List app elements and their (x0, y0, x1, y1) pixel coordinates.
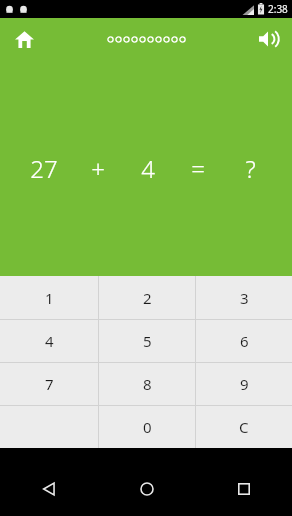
button[interactable]: 2 (99, 276, 195, 319)
button[interactable]: 0 (99, 406, 195, 448)
button[interactable]: Home (8, 23, 40, 55)
staticText: 9 (240, 374, 249, 394)
staticText: + (91, 152, 105, 185)
button[interactable]: 3 (196, 276, 292, 319)
staticText: 0 (143, 417, 152, 437)
button[interactable]: 5 (99, 320, 195, 362)
staticText: C (239, 417, 249, 437)
button[interactable]: 6 (196, 320, 292, 362)
staticText: 1 (45, 288, 54, 308)
button[interactable]: 1 (0, 276, 98, 319)
staticText: = (191, 152, 205, 185)
button[interactable]: Back (0, 469, 98, 509)
button[interactable]: 4 (0, 320, 98, 362)
staticText: 3 (240, 288, 249, 308)
staticText: ? (245, 152, 256, 185)
staticText: 2:38 (268, 2, 288, 16)
staticText: 4 (45, 331, 54, 351)
staticText: 8 (143, 374, 152, 394)
button[interactable]: Home (98, 469, 195, 509)
staticText: 6 (240, 331, 249, 351)
staticText: 4 (141, 152, 155, 185)
button[interactable]: 7 (0, 363, 98, 405)
button[interactable]: 9 (196, 363, 292, 405)
button[interactable]: C (196, 406, 292, 448)
staticText: 7 (45, 374, 54, 394)
staticText: 27 (30, 152, 58, 185)
button[interactable]: Sound (252, 23, 284, 55)
staticText: 2 (143, 288, 152, 308)
staticText: 5 (143, 331, 152, 351)
button[interactable]: 8 (99, 363, 195, 405)
button[interactable]: Recent apps (195, 469, 292, 509)
